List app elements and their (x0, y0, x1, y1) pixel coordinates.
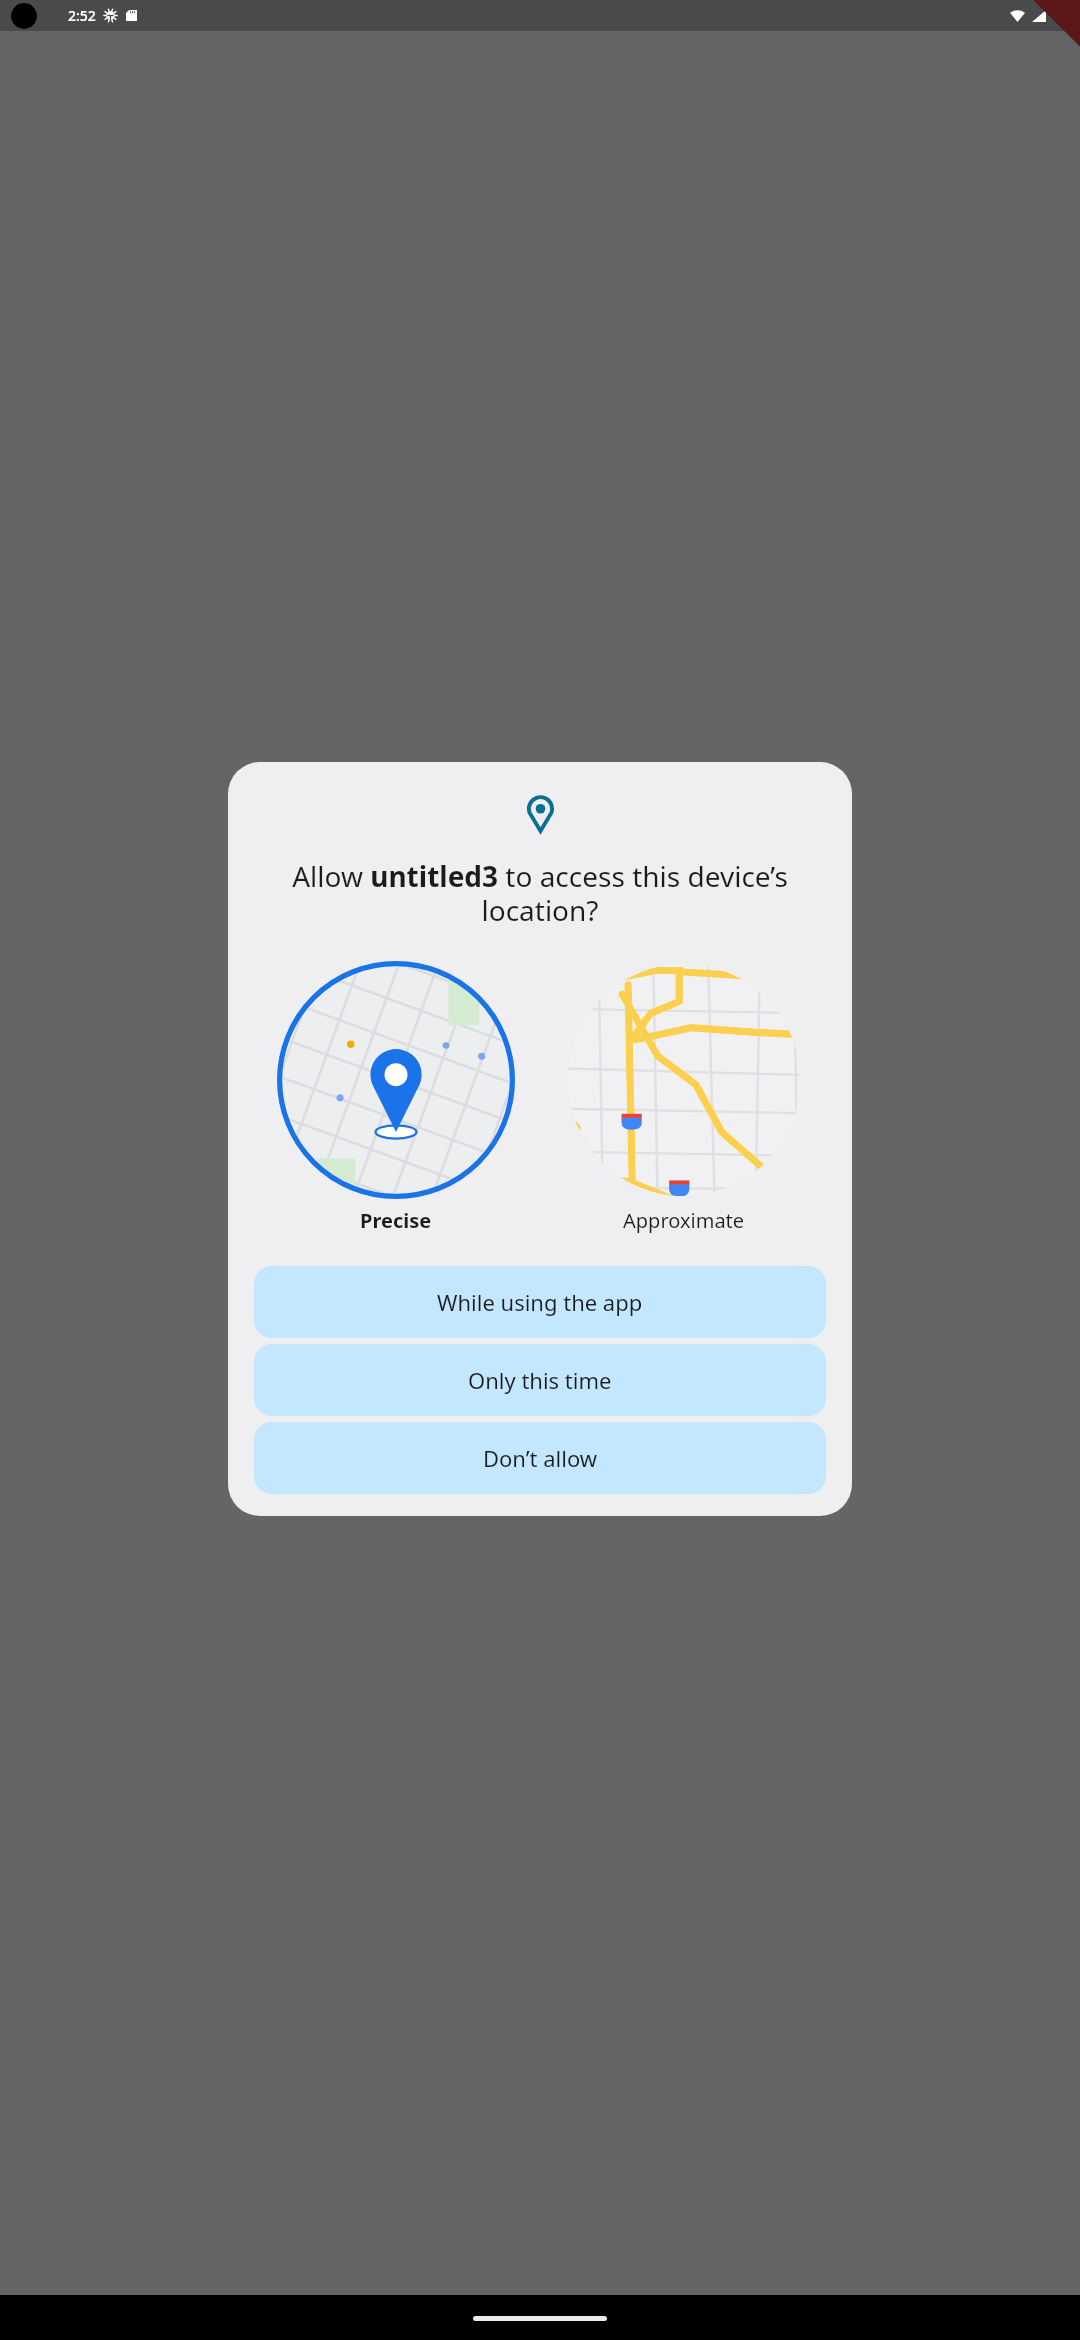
staticText: Approximate (623, 1207, 745, 1234)
button[interactable]: Only this time (254, 1344, 826, 1416)
staticText: While using the app (437, 1287, 643, 1317)
button[interactable]: Don’t allow (254, 1422, 826, 1494)
staticText: 2:52 (68, 6, 96, 25)
button[interactable]: While using the app (254, 1266, 826, 1338)
staticText: Only this time (468, 1365, 612, 1395)
button[interactable]: Approximate location (565, 961, 803, 1234)
other: Approximate location (565, 961, 803, 1199)
other: Precise location (277, 961, 515, 1199)
staticText: Don’t allow (483, 1443, 598, 1473)
staticText: Allow untitled3 to access this device’s … (254, 857, 826, 929)
button[interactable]: Precise location (277, 961, 515, 1234)
staticText: Precise (360, 1207, 432, 1234)
